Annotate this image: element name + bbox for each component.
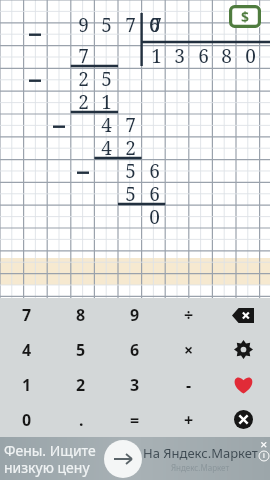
staticText: 5 <box>101 12 112 35</box>
staticText: 8 <box>221 43 232 66</box>
staticText: × <box>184 339 194 361</box>
staticText: 0 <box>22 409 32 431</box>
staticText: 1 <box>151 43 162 66</box>
button[interactable]: + <box>162 402 216 437</box>
button[interactable]: 6 <box>108 332 162 367</box>
staticText: 5 <box>101 66 112 89</box>
button[interactable]: 4 <box>0 332 54 367</box>
staticText: 3 <box>174 43 185 66</box>
staticText: ✕ <box>260 440 268 450</box>
staticText: 0 <box>245 43 256 66</box>
button[interactable]: Backspace <box>216 298 270 332</box>
button[interactable]: 5 <box>54 332 108 367</box>
button[interactable]: Фены. Ищите низкую цену <box>0 437 270 480</box>
button[interactable]: 1 <box>0 367 54 402</box>
staticText: i <box>263 451 265 461</box>
staticText: Фены. Ищите низкую цену <box>4 441 96 477</box>
staticText: 2 <box>125 135 136 158</box>
staticText: 0 <box>149 204 160 227</box>
button[interactable]: Settings <box>216 332 270 367</box>
button[interactable]: Close <box>216 402 270 437</box>
staticText: + <box>184 409 194 431</box>
staticText: 9 <box>78 12 89 35</box>
staticText: 6 <box>149 12 160 35</box>
staticText: 5 <box>125 158 136 181</box>
button[interactable]: Favorites <box>216 367 270 402</box>
button[interactable]: Open ad <box>104 440 142 478</box>
button[interactable]: × <box>162 332 216 367</box>
staticText: - <box>186 374 192 396</box>
staticText: Яндекс.Маркет <box>171 462 230 473</box>
button[interactable]: 2 <box>54 367 108 402</box>
staticText: 4 <box>101 135 112 158</box>
staticText: 5 <box>76 339 86 361</box>
button[interactable]: Close ad <box>258 439 269 450</box>
button[interactable]: 3 <box>108 367 162 402</box>
staticText: . <box>79 409 84 431</box>
button[interactable]: 8 <box>54 298 108 332</box>
button[interactable]: - <box>162 367 216 402</box>
staticText: 6 <box>149 181 160 204</box>
button[interactable]: ÷ <box>162 298 216 332</box>
button[interactable]: 7 <box>0 298 54 332</box>
staticText: ÷ <box>184 304 194 326</box>
staticText: 7 <box>151 12 162 35</box>
button[interactable]: = <box>108 402 162 437</box>
staticText: 8 <box>76 304 86 326</box>
staticText: 0 <box>149 12 160 35</box>
button[interactable]: 0 <box>0 402 54 437</box>
staticText: 7 <box>22 304 32 326</box>
staticText: 1 <box>101 89 112 112</box>
button[interactable]: . <box>54 402 108 437</box>
staticText: 6 <box>198 43 209 66</box>
staticText: 9 <box>130 304 140 326</box>
staticText: 7 <box>125 112 136 135</box>
staticText: 2 <box>78 66 89 89</box>
staticText: 2 <box>76 374 86 396</box>
staticText: $ <box>241 7 250 26</box>
button[interactable]: Remove ads <box>229 5 261 28</box>
staticText: = <box>130 409 140 431</box>
staticText: На Яндекс.Маркет <box>143 444 258 462</box>
staticText: 2 <box>78 89 89 112</box>
staticText: 5 <box>125 181 136 204</box>
button[interactable]: 9 <box>108 298 162 332</box>
staticText: 6 <box>149 158 160 181</box>
staticText: 1 <box>22 374 32 396</box>
staticText: 4 <box>101 112 112 135</box>
staticText: 4 <box>22 339 32 361</box>
staticText: 6 <box>130 339 140 361</box>
staticText: 7 <box>78 43 89 66</box>
staticText: 7 <box>125 12 136 35</box>
staticText: 3 <box>130 374 140 396</box>
